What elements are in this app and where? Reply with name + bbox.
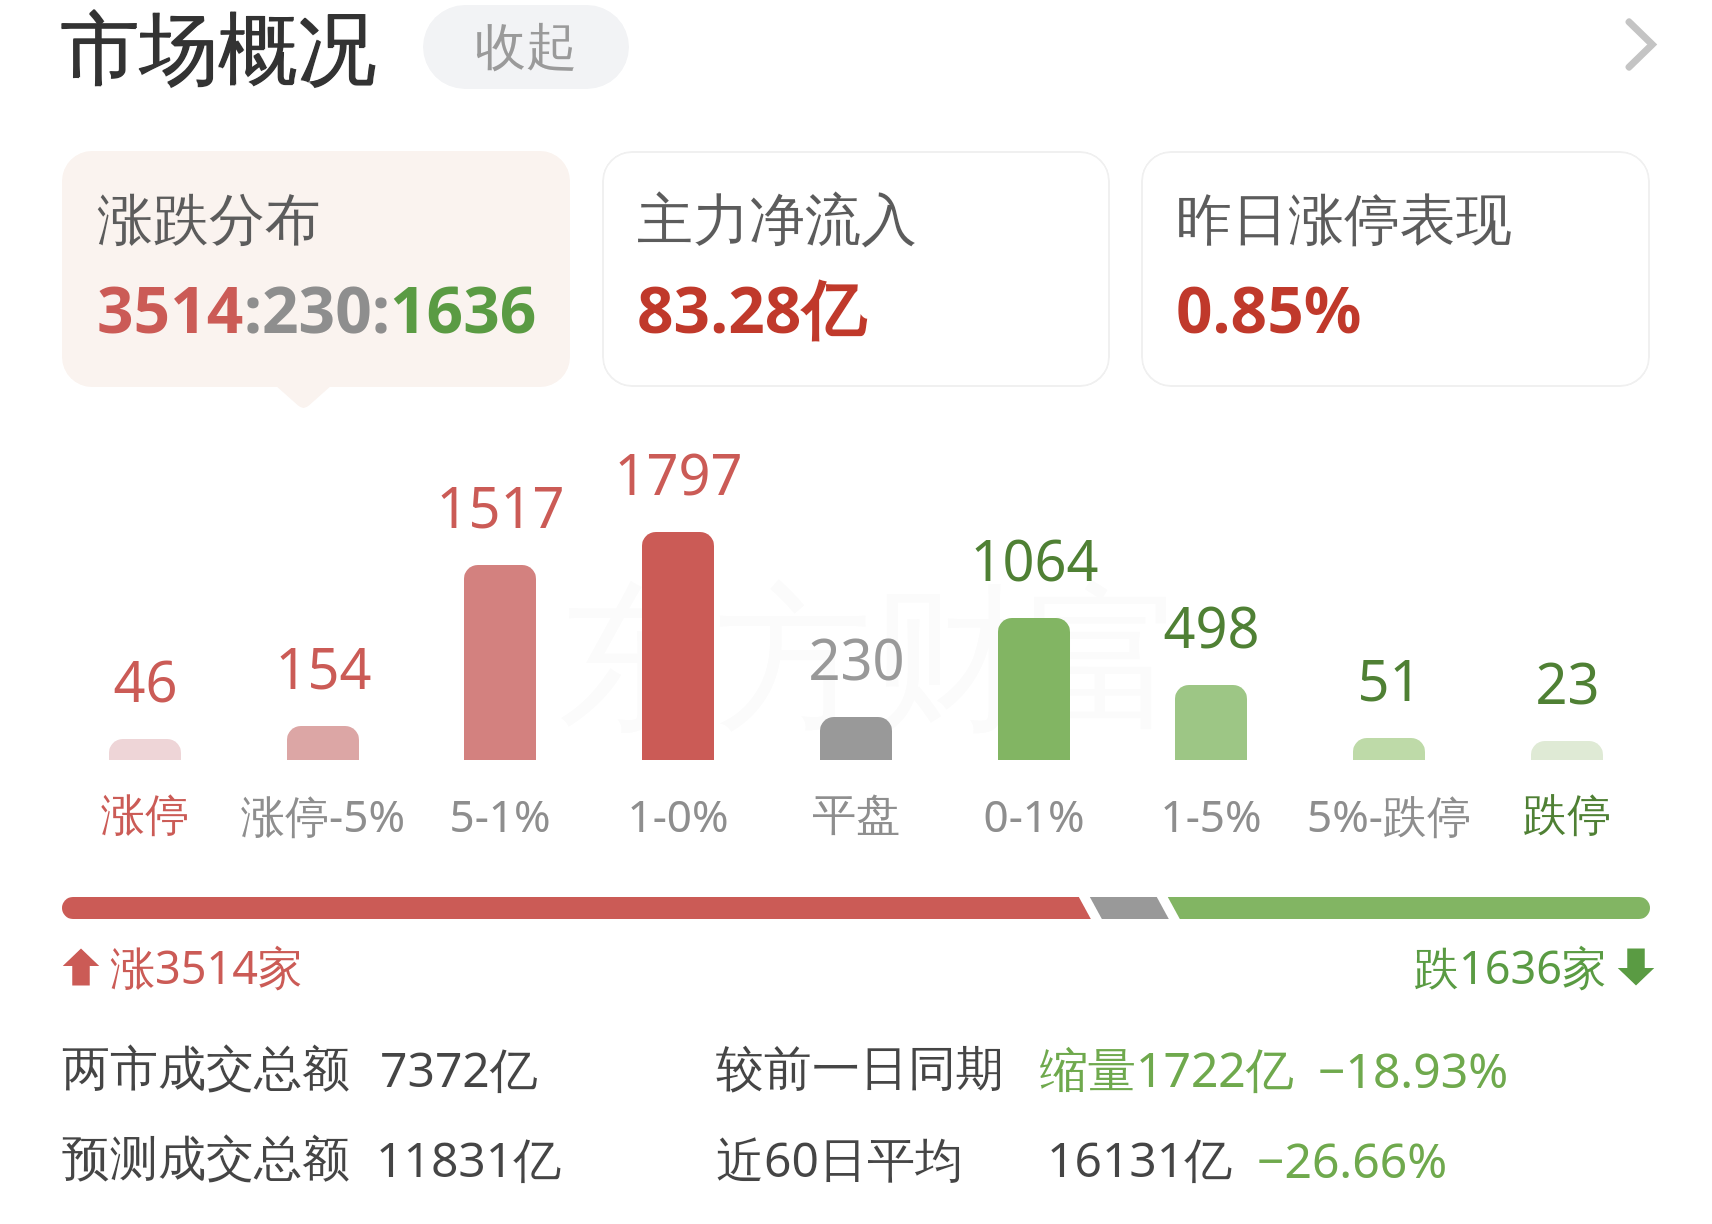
staticText: 市场概况: [61, 0, 377, 92]
staticText: 较前一日同期: [716, 1039, 1004, 1099]
staticText: 154: [275, 629, 372, 701]
button[interactable]: 涨停: [57, 784, 233, 846]
staticText: 涨停: [101, 788, 189, 843]
staticText: 涨跌分布: [97, 185, 321, 256]
staticText: 83.28亿: [637, 265, 866, 352]
staticText: 23: [1535, 644, 1600, 716]
staticText: 1797: [614, 435, 743, 507]
button[interactable]: 收起: [423, 5, 629, 89]
staticText: −26.66%: [1257, 1127, 1448, 1192]
staticText: :: [244, 265, 262, 352]
staticText: 0-1%: [983, 785, 1085, 845]
staticText: 1517: [436, 468, 565, 540]
staticText: 近60日平均: [716, 1126, 963, 1192]
button[interactable]: 1-5%: [1123, 784, 1299, 846]
staticText: 昨日涨停表现: [1176, 185, 1512, 256]
staticText: 东方财富: [558, 562, 1186, 760]
button[interactable]: 5-1%: [412, 784, 588, 846]
button[interactable]: 平盘: [768, 784, 944, 846]
staticText: 5%-跌停: [1307, 785, 1471, 845]
button[interactable]: 涨跌分布: [62, 151, 570, 387]
staticText: 市场概况: [60, 0, 376, 92]
button[interactable]: 展开更多: [1592, 0, 1688, 89]
staticText: :: [372, 265, 390, 352]
staticText: 3514: [97, 265, 244, 352]
staticText: 平盘: [812, 788, 900, 843]
staticText: 缩量1722亿: [1040, 1036, 1294, 1102]
staticText: 1636: [390, 265, 537, 352]
staticText: 230: [808, 620, 905, 692]
staticText: 主力净流入: [637, 185, 917, 256]
staticText: 市场概况: [60, 1, 376, 93]
button[interactable]: 5%-跌停: [1301, 784, 1477, 846]
button[interactable]: 1-0%: [590, 784, 766, 846]
button[interactable]: 0-1%: [946, 784, 1122, 846]
staticText: −18.93%: [1318, 1037, 1509, 1102]
staticText: 0.85%: [1176, 265, 1362, 352]
staticText: 跌1636家: [1414, 936, 1607, 997]
staticText: 11831亿: [376, 1126, 562, 1192]
staticText: 跌停: [1523, 788, 1611, 843]
staticText: 5-1%: [449, 785, 551, 845]
staticText: 230: [262, 265, 372, 352]
staticText: 7372亿: [380, 1036, 538, 1102]
staticText: 预测成交总额: [62, 1129, 350, 1189]
button[interactable]: 昨日涨停表现: [1141, 151, 1650, 387]
staticText: 1064: [970, 521, 1099, 593]
staticText: 1-5%: [1160, 785, 1262, 845]
staticText: 16131亿: [1047, 1126, 1233, 1192]
staticText: 涨停-5%: [241, 785, 405, 845]
staticText: 46: [113, 642, 178, 714]
staticText: 498: [1163, 588, 1260, 660]
staticText: 51: [1357, 641, 1422, 713]
button[interactable]: 涨停-5%: [235, 784, 411, 846]
staticText: 涨3514家: [110, 936, 303, 997]
button[interactable]: 主力净流入: [602, 151, 1110, 387]
button[interactable]: 跌停: [1479, 784, 1655, 846]
staticText: 收起: [475, 15, 577, 79]
staticText: 1-0%: [627, 785, 729, 845]
staticText: 两市成交总额: [62, 1039, 350, 1099]
